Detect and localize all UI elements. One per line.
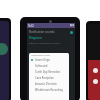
staticText: ▮▮▮ bbox=[70, 24, 74, 27]
staticText: Sonnet Ergo bbox=[35, 58, 50, 62]
button[interactable]: Notification sounds bbox=[29, 29, 73, 35]
button[interactable]: 9:42 bbox=[27, 23, 75, 28]
staticText: Acoustic Direction bbox=[35, 82, 57, 86]
staticText: Cane Reception bbox=[35, 76, 54, 80]
staticText: Ringtone bbox=[29, 36, 43, 40]
button[interactable]: Windstream Recording bbox=[29, 87, 69, 93]
staticText: Windstream Recording bbox=[35, 88, 63, 92]
staticText: 9:42 bbox=[28, 24, 34, 28]
button[interactable]: Sonnet Ergo bbox=[29, 57, 69, 63]
staticText: Default notification sound bbox=[29, 41, 60, 44]
button[interactable]: Cane Reception bbox=[29, 75, 69, 81]
staticText: Softsound bbox=[35, 64, 48, 68]
staticText: Turtle Dyp Remedies bbox=[35, 70, 61, 74]
button[interactable]: Turtle Dyp Remedies bbox=[29, 69, 69, 75]
button[interactable]: Softsound bbox=[29, 63, 69, 69]
button[interactable]: Acoustic Direction bbox=[29, 81, 69, 87]
staticText: Notification sound bbox=[31, 54, 50, 57]
staticText: Notification sounds bbox=[29, 30, 55, 34]
